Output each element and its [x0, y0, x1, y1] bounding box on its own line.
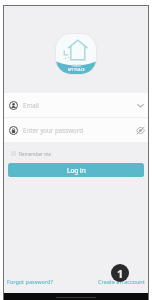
- staticText: MY PLACE: [68, 68, 85, 72]
- staticText: Log in: [67, 166, 86, 175]
- staticText: Email: [23, 101, 39, 109]
- staticText: SMART: [72, 64, 82, 68]
- button[interactable]: Email: [3, 93, 149, 117]
- button[interactable]: Create an account: [95, 275, 149, 288]
- staticText: Remember me: [19, 151, 52, 157]
- button[interactable]: Log in: [8, 163, 144, 177]
- staticText: Enter your password: [23, 126, 84, 134]
- button[interactable]: Forgot password?: [3, 275, 56, 288]
- button[interactable]: Show email suggestions: [136, 101, 145, 110]
- button[interactable]: Remember me: [10, 148, 53, 159]
- other: Notification badge, 1: [111, 264, 129, 282]
- staticText: 1: [117, 266, 124, 281]
- button[interactable]: Enter your password: [3, 118, 149, 142]
- button[interactable]: Show password: [136, 126, 145, 135]
